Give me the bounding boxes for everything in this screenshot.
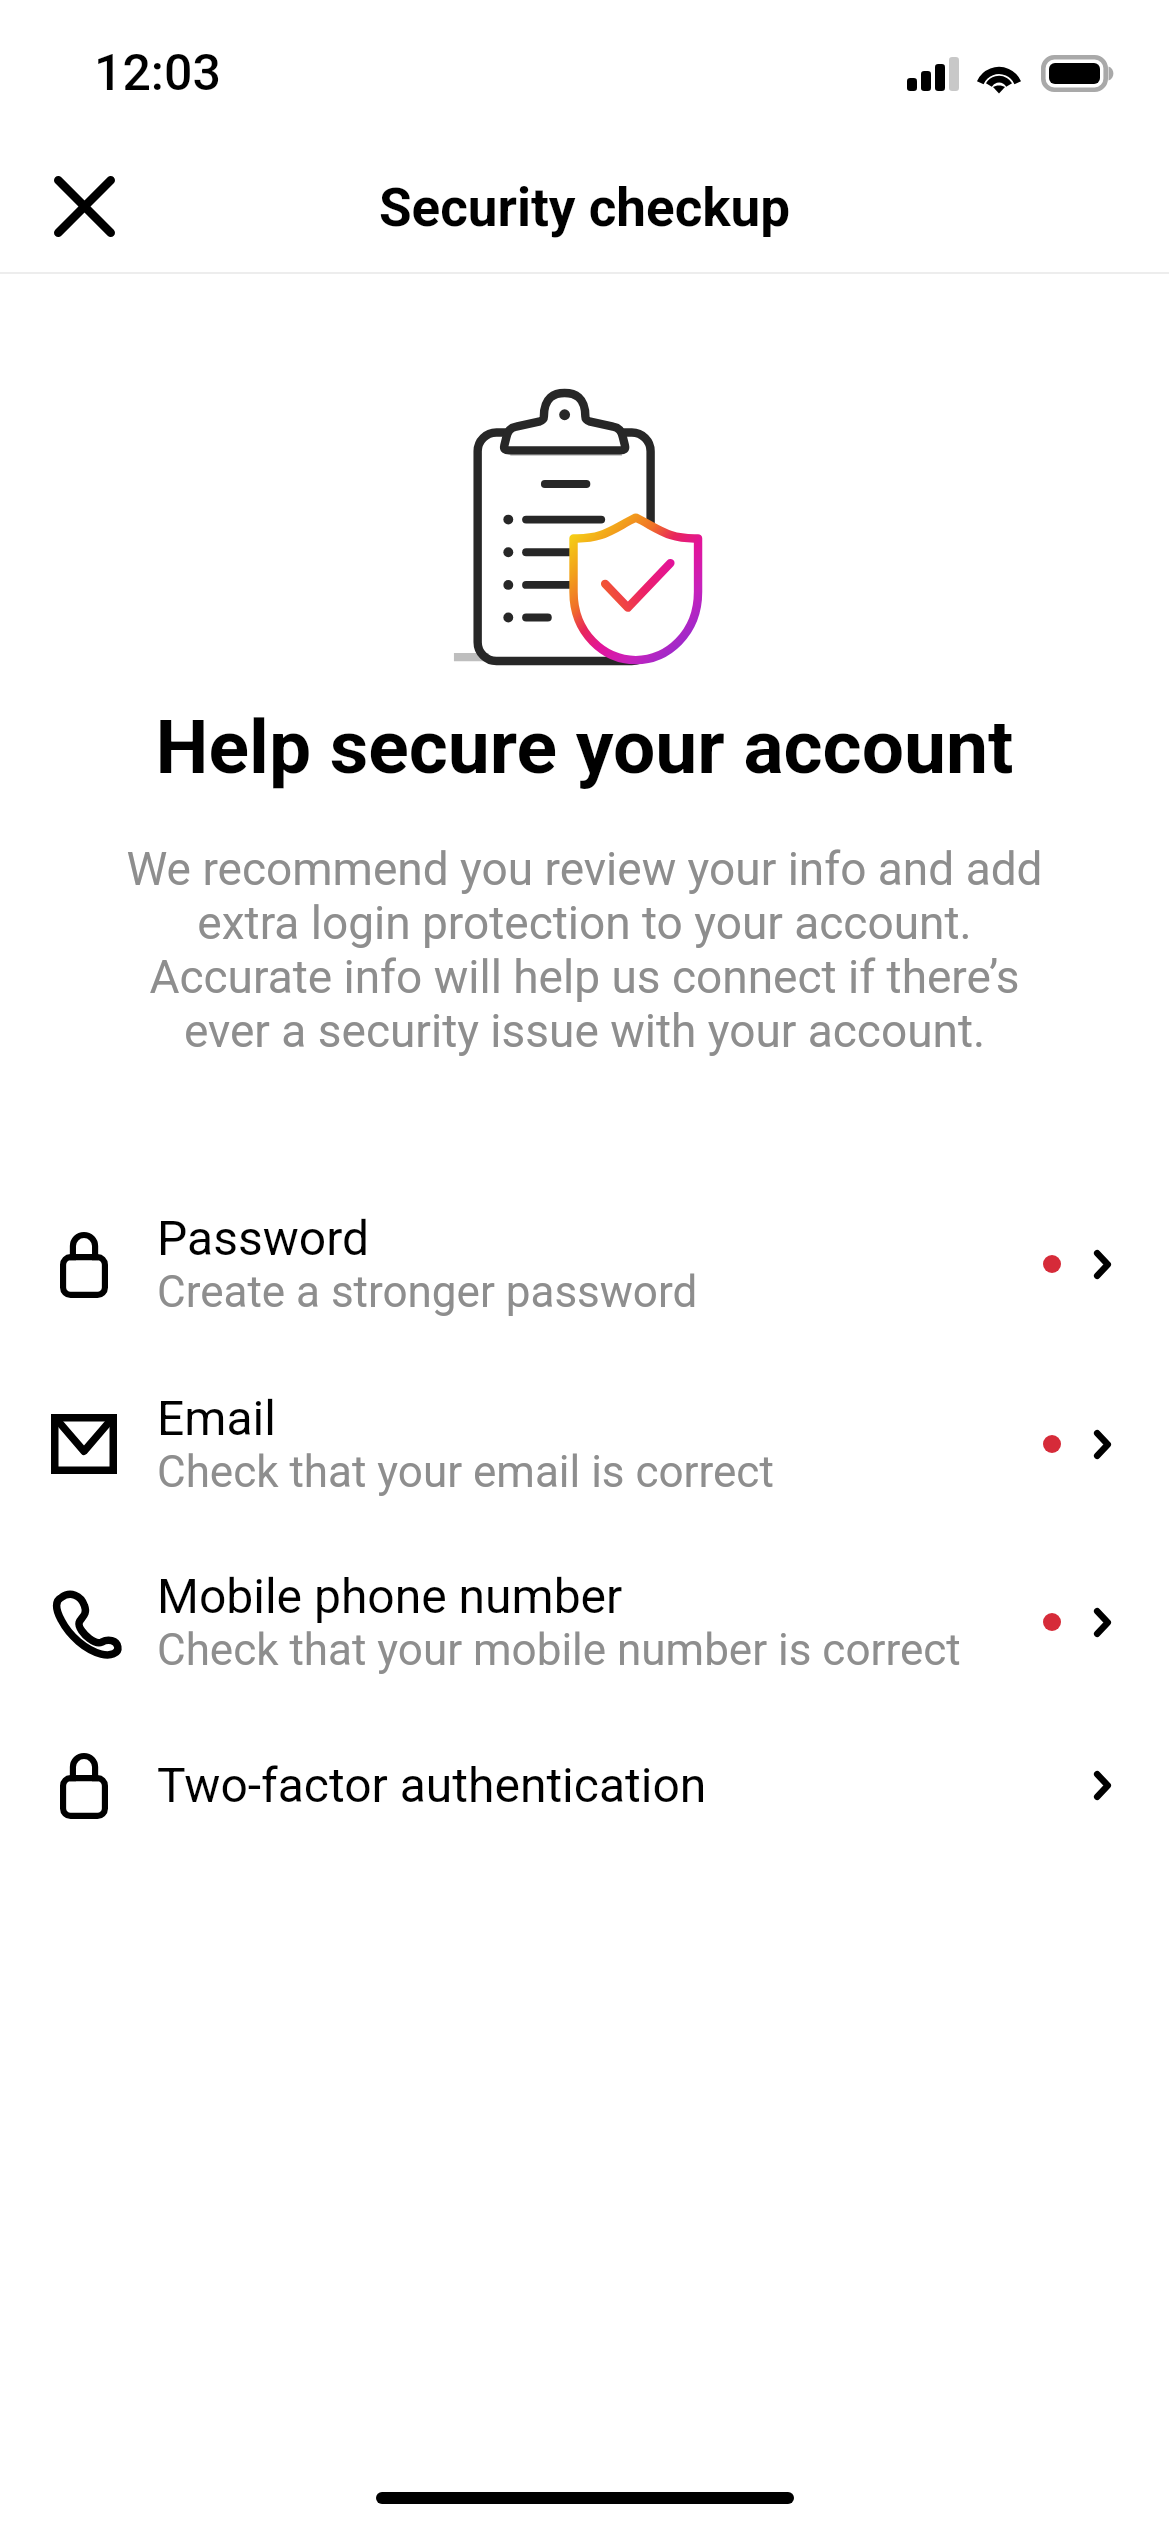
staticText: Help secure your account (0, 703, 1169, 791)
button[interactable]: Two-factor authentication (0, 1695, 1169, 1875)
staticText: Two-factor authentication (157, 1757, 707, 1813)
staticText: Check that your mobile number is correct (157, 1624, 961, 1676)
button[interactable]: Password (0, 1174, 1169, 1354)
button[interactable]: Mobile phone number (0, 1532, 1169, 1712)
staticText: We recommend you review your info and ad… (110, 842, 1059, 1058)
staticText: Security checkup (0, 177, 1169, 239)
button[interactable]: Close (30, 152, 138, 260)
button[interactable]: Email (0, 1354, 1169, 1534)
staticText: Password (157, 1210, 370, 1266)
staticText: Check that your email is correct (157, 1446, 774, 1498)
staticText: Email (157, 1390, 276, 1446)
staticText: Create a stronger password (157, 1266, 698, 1318)
staticText: Mobile phone number (157, 1568, 623, 1624)
staticText: 12:03 (94, 44, 221, 103)
